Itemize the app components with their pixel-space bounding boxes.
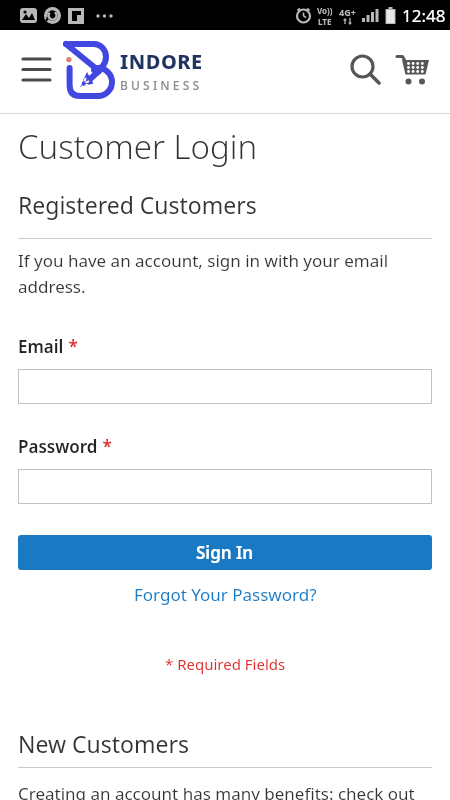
staticText: Registered Customers <box>18 189 257 220</box>
button[interactable] <box>18 369 432 404</box>
button[interactable] <box>392 48 434 92</box>
staticText: Creating an account has many benefits: c… <box>18 782 432 800</box>
staticText: Customer Login <box>18 124 258 169</box>
button[interactable] <box>18 469 432 504</box>
staticText: If you have an account, sign in with you… <box>18 249 389 298</box>
staticText: Vo)) <box>317 5 333 16</box>
staticText: New Customers <box>18 728 190 759</box>
staticText: Password <box>18 435 98 458</box>
button[interactable] <box>18 48 56 92</box>
staticText: 4G+ <box>339 6 356 18</box>
staticText: INDORE <box>120 48 203 75</box>
staticText: * <box>64 335 78 358</box>
staticText: LTE <box>318 16 332 27</box>
staticText: Forgot Your Password? <box>134 583 317 606</box>
staticText: Email <box>18 335 64 358</box>
staticText: BUSINESS <box>120 77 203 93</box>
staticText: * Required Fields <box>165 654 286 674</box>
staticText: * <box>98 435 112 458</box>
staticText: 12:48 <box>402 4 446 27</box>
button[interactable]: Sign In <box>18 535 432 570</box>
button[interactable] <box>345 48 387 92</box>
staticText: Sign In <box>196 541 254 564</box>
button[interactable]: Forgot Your Password? <box>134 583 317 606</box>
